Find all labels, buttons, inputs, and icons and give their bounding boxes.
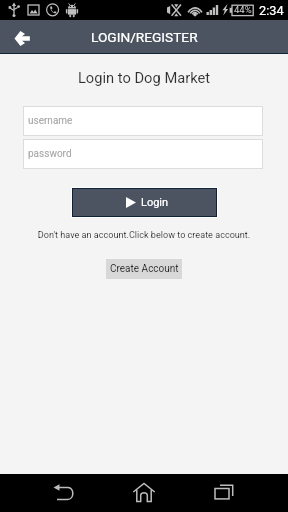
button[interactable]: username xyxy=(23,106,263,136)
button[interactable]: Create Account xyxy=(106,259,182,279)
staticText: LOGIN/REGISTER xyxy=(91,29,198,45)
staticText: Create Account xyxy=(110,263,179,275)
staticText: username xyxy=(28,115,73,127)
button[interactable]: Back xyxy=(5,20,39,54)
staticText: password xyxy=(28,148,72,160)
staticText: 44% xyxy=(234,4,252,15)
button[interactable]: Recent apps xyxy=(202,474,246,512)
button[interactable]: Login xyxy=(73,189,216,216)
button[interactable]: Home xyxy=(122,474,166,512)
staticText: Don't have an account.Click below to cre… xyxy=(0,230,288,241)
staticText: Login xyxy=(141,196,169,209)
staticText: 2:34 xyxy=(259,3,284,18)
staticText: Login to Dog Market xyxy=(0,69,288,86)
button[interactable]: Back xyxy=(42,474,86,512)
button[interactable]: password xyxy=(23,139,263,169)
